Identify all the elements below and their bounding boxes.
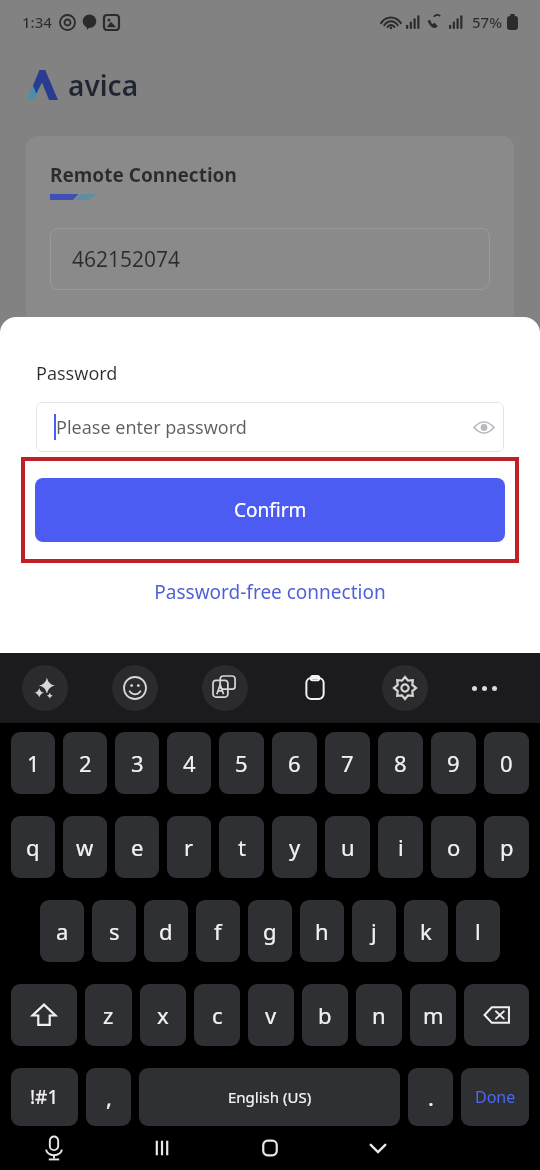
button[interactable]: Clipboard [292,665,338,711]
button[interactable]: 2 [63,732,107,794]
staticText: y [289,832,301,862]
button[interactable]: t [219,816,264,878]
button[interactable]: Password-free connection [138,573,402,611]
staticText: v [265,1000,277,1030]
button[interactable]: 0 [484,732,529,794]
button[interactable]: w [63,816,107,878]
button[interactable]: d [144,900,188,962]
button[interactable]: a [40,900,84,962]
staticText: Remote Connection [50,162,237,188]
staticText: 7 [341,748,354,778]
button[interactable]: y [272,816,317,878]
staticText: 8 [394,748,407,778]
button[interactable]: Translate [202,665,248,711]
button[interactable]: f [196,900,240,962]
staticText: Confirm [234,497,307,523]
button[interactable]: n [356,984,402,1046]
staticText: k [420,916,432,946]
button[interactable]: Confirm [35,478,505,542]
button[interactable]: h [300,900,344,962]
staticText: p [500,832,514,862]
button[interactable]: x [140,984,186,1046]
staticText: 1:34 [22,12,52,32]
button[interactable]: q [11,816,55,878]
staticText: 1 [27,748,40,778]
staticText: 0 [500,748,513,778]
button[interactable]: i [378,816,423,878]
button[interactable]: r [167,816,211,878]
button[interactable]: m [410,984,456,1046]
staticText: c [212,1000,223,1030]
staticText: English (US) [228,1087,312,1107]
staticText: n [372,1000,386,1030]
button[interactable]: Show password [464,407,504,447]
staticText: d [159,916,173,946]
button[interactable]: 6 [272,732,317,794]
staticText: Done [475,1086,516,1108]
button[interactable]: e [115,816,159,878]
staticText: a [56,916,69,946]
button[interactable]: Home [216,1126,324,1170]
staticText: w [76,832,94,862]
button[interactable]: k [404,900,448,962]
staticText: f [214,916,222,946]
button[interactable]: 3 [115,732,159,794]
staticText: 462152074 [72,245,181,274]
button[interactable]: s [92,900,136,962]
button[interactable]: j [352,900,396,962]
staticText: 2 [79,748,92,778]
button[interactable]: Voice input [0,1126,108,1170]
button[interactable]: !#1 [11,1068,78,1126]
button[interactable]: Please enter password [36,402,504,452]
button[interactable]: More [464,668,504,708]
button[interactable]: Hide keyboard [324,1126,432,1170]
staticText: x [157,1000,169,1030]
staticText: , [106,1082,112,1112]
staticText: o [447,832,461,862]
button[interactable]: Shift [11,984,77,1046]
button[interactable]: Done [461,1068,529,1126]
staticText: j [371,916,377,946]
button[interactable]: c [194,984,240,1046]
button[interactable]: , [86,1068,131,1126]
staticText: q [26,832,40,862]
staticText: Password [36,361,118,386]
button[interactable]: p [484,816,529,878]
staticText: e [131,832,144,862]
button[interactable]: o [431,816,476,878]
button[interactable]: 4 [167,732,211,794]
button[interactable]: 9 [431,732,476,794]
staticText: u [341,832,355,862]
staticText: 4 [183,748,196,778]
button[interactable]: English (US) [139,1068,400,1126]
staticText: Password-free connection [154,579,386,605]
button[interactable]: Emoji [112,665,158,711]
staticText: m [423,1000,444,1030]
button[interactable]: . [408,1068,453,1126]
staticText: 9 [447,748,460,778]
button[interactable]: Backspace [464,984,529,1046]
staticText: s [109,916,120,946]
button[interactable]: Assistant [22,665,68,711]
staticText: i [398,832,404,862]
button[interactable]: u [325,816,370,878]
button[interactable]: Settings [382,665,428,711]
button[interactable]: 1 [11,732,55,794]
button[interactable]: g [248,900,292,962]
button[interactable]: Recents [108,1126,216,1170]
button[interactable]: 8 [378,732,423,794]
button[interactable]: z [85,984,132,1046]
button[interactable]: v [248,984,294,1046]
button[interactable]: 7 [325,732,370,794]
staticText: 57% [472,12,502,32]
staticText: 5 [235,748,248,778]
staticText: b [318,1000,332,1030]
staticText: r [184,832,194,862]
button[interactable]: b [302,984,348,1046]
button[interactable]: l [456,900,500,962]
staticText: l [475,916,481,946]
staticText: . [428,1082,434,1112]
staticText: z [103,1000,114,1030]
button[interactable]: 5 [219,732,264,794]
staticText: 6 [288,748,301,778]
